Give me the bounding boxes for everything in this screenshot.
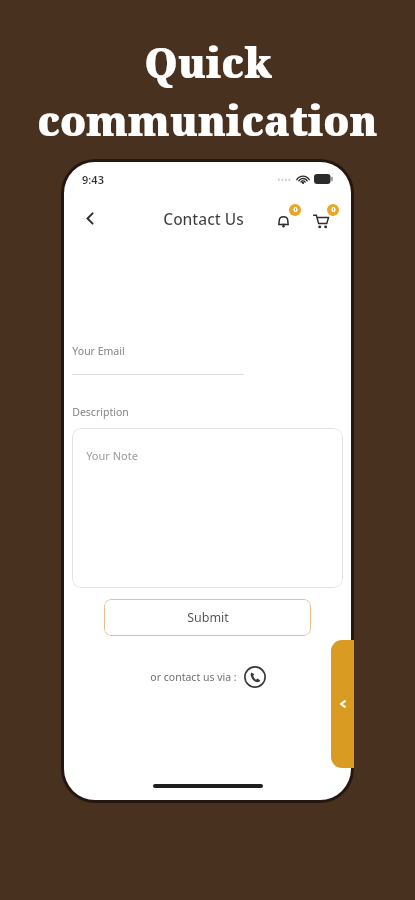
staticText: Quick <box>144 34 272 90</box>
button[interactable]: Call us <box>244 666 266 688</box>
staticText: Your Email <box>72 344 125 358</box>
staticText: or contact us via : <box>150 670 237 684</box>
staticText: 9:43 <box>82 172 104 187</box>
staticText: 0 <box>331 205 336 215</box>
button[interactable]: Notifications <box>273 204 301 232</box>
button[interactable]: Submit <box>104 599 311 636</box>
button[interactable]: Your Note <box>72 428 343 588</box>
staticText: Description <box>72 405 129 419</box>
staticText: 0 <box>293 205 298 215</box>
staticText: Contact Us <box>163 208 244 229</box>
staticText: communication <box>37 92 378 148</box>
staticText: Submit <box>187 609 229 626</box>
button[interactable]: Back <box>72 200 108 236</box>
button[interactable]: Cart <box>311 204 339 232</box>
staticText: Your Note <box>86 448 138 463</box>
button[interactable]: Open side panel <box>331 640 354 768</box>
